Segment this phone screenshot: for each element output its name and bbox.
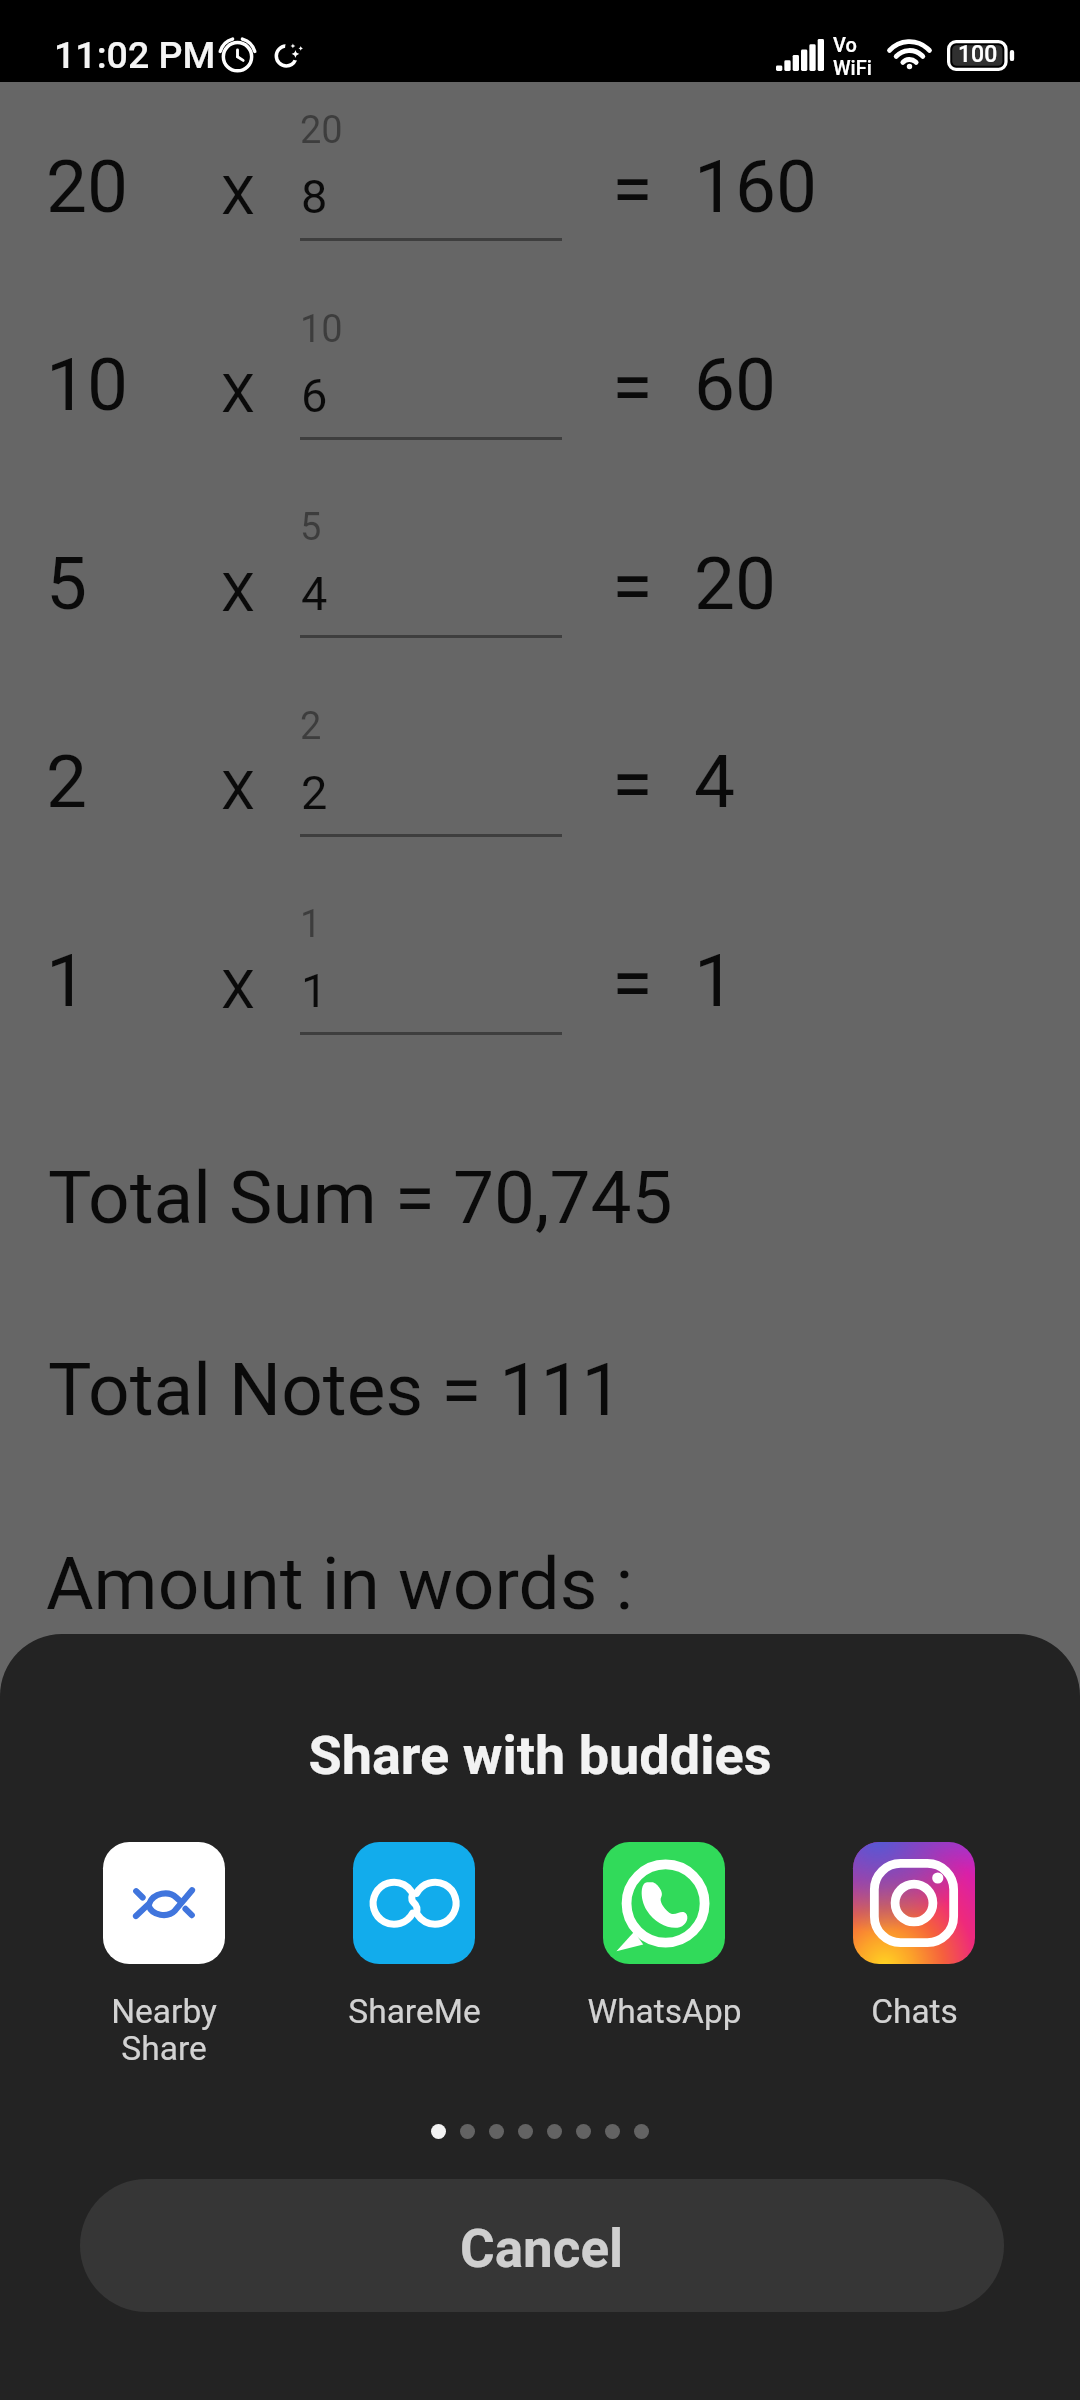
staticText: 10 bbox=[300, 307, 343, 352]
button[interactable]: 10 bbox=[295, 306, 567, 444]
staticText: = bbox=[612, 542, 653, 629]
staticText: 2 bbox=[300, 704, 322, 749]
staticText: X bbox=[221, 561, 255, 624]
staticText: X bbox=[221, 362, 255, 425]
staticText: 100 bbox=[958, 41, 998, 68]
staticText: 10 bbox=[46, 342, 129, 428]
other: Chats bbox=[853, 1842, 975, 1964]
staticText: Total Notes = 111 bbox=[48, 1347, 623, 1433]
staticText: 6 bbox=[301, 368, 328, 423]
staticText: = bbox=[612, 939, 653, 1026]
staticText: Cancel bbox=[460, 2218, 624, 2280]
other: Nearby Share bbox=[103, 1842, 225, 1964]
staticText: 20 bbox=[694, 541, 777, 627]
staticText: 4 bbox=[694, 739, 736, 825]
button[interactable]: 2 bbox=[295, 703, 567, 841]
button[interactable]: Cancel bbox=[80, 2179, 1004, 2312]
staticText: 2 bbox=[301, 765, 328, 820]
staticText: = bbox=[612, 343, 653, 430]
staticText: X bbox=[221, 164, 255, 227]
staticText: 20 bbox=[46, 144, 129, 230]
button[interactable]: ShareMe bbox=[289, 1842, 539, 2031]
other: ShareMe bbox=[353, 1842, 475, 1964]
staticText: 4 bbox=[301, 566, 328, 621]
button[interactable]: 1 bbox=[295, 901, 567, 1039]
staticText: 5 bbox=[46, 541, 88, 627]
staticText: = bbox=[612, 145, 653, 232]
button[interactable]: Nearby Share bbox=[39, 1842, 289, 2068]
staticText: 11:02 PM bbox=[54, 33, 216, 77]
staticText: WiFi bbox=[833, 56, 872, 79]
staticText: Chats bbox=[871, 1992, 958, 2031]
staticText: X bbox=[221, 759, 255, 822]
staticText: 5 bbox=[300, 505, 322, 550]
staticText: X bbox=[221, 958, 255, 1021]
staticText: 160 bbox=[694, 144, 818, 230]
staticText: = bbox=[612, 740, 653, 827]
staticText: 1 bbox=[694, 938, 736, 1024]
button[interactable]: 20 bbox=[295, 107, 567, 245]
staticText: 1 bbox=[300, 902, 322, 947]
staticText: 1 bbox=[301, 963, 328, 1018]
staticText: 20 bbox=[300, 108, 343, 153]
staticText: Amount in words : bbox=[46, 1541, 634, 1627]
staticText: 2 bbox=[46, 739, 88, 825]
staticText: Total Sum = 70,745 bbox=[48, 1155, 673, 1241]
button[interactable]: Chats bbox=[789, 1842, 1039, 2031]
staticText: Nearby Share bbox=[111, 1992, 217, 2068]
staticText: WhatsApp bbox=[587, 1992, 742, 2031]
staticText: 1 bbox=[46, 938, 88, 1024]
button[interactable]: WhatsApp bbox=[539, 1842, 789, 2031]
staticText: 8 bbox=[301, 169, 328, 224]
button[interactable]: 5 bbox=[295, 504, 567, 642]
staticText: ShareMe bbox=[348, 1992, 481, 2031]
other: WhatsApp bbox=[603, 1842, 725, 1964]
staticText: 60 bbox=[694, 342, 777, 428]
staticText: Share with buddies bbox=[0, 1724, 1080, 1787]
staticText: Vo bbox=[833, 33, 857, 56]
